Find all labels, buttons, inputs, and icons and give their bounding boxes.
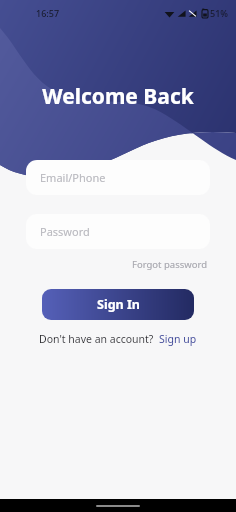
staticText: Sign In [97, 296, 140, 313]
other: Wi-Fi [164, 8, 175, 19]
staticText: Welcome Back [0, 82, 236, 111]
staticText: Sign up [159, 332, 197, 346]
staticText: Forgot password [132, 258, 208, 271]
other: Battery 51 percent [202, 8, 208, 18]
other: Mobile signal [177, 9, 186, 18]
staticText: 51% [210, 7, 228, 19]
staticText: Don't have an account? [39, 332, 154, 346]
button[interactable]: Email/Phone [26, 160, 210, 195]
button[interactable]: Sign up [158, 332, 198, 346]
staticText: Password [40, 224, 90, 239]
button[interactable]: Password [26, 214, 210, 249]
button[interactable]: Forgot password [130, 257, 210, 272]
staticText: 16:57 [36, 7, 60, 19]
staticText: Email/Phone [40, 170, 106, 185]
other: Second SIM signal [188, 9, 197, 18]
button[interactable]: Sign In [42, 289, 194, 320]
